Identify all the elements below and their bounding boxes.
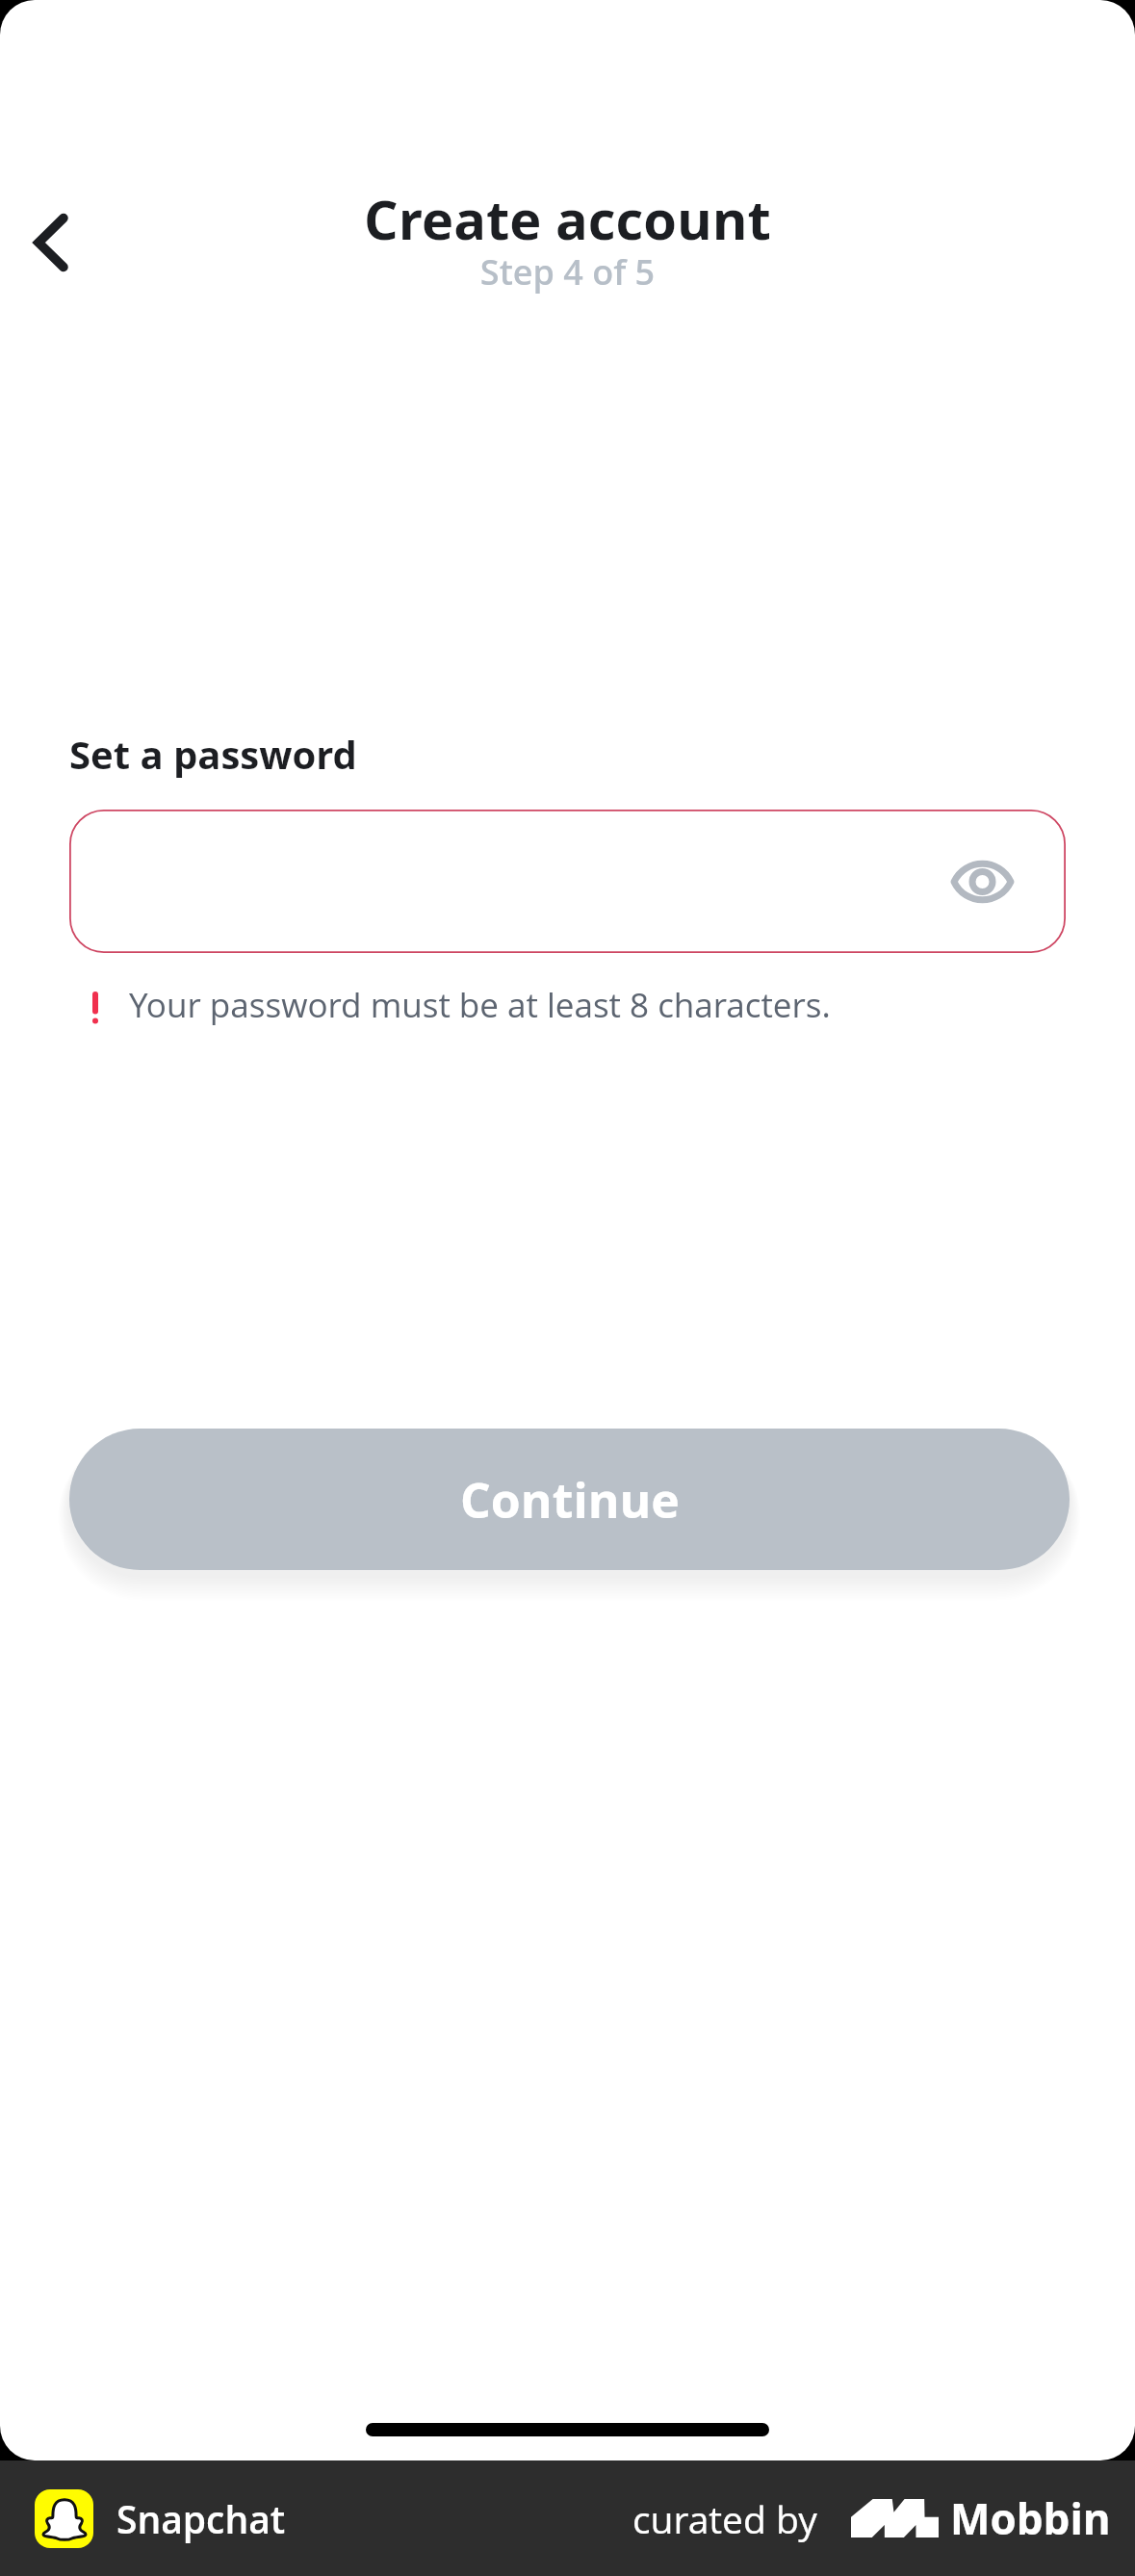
staticText: Mobbin bbox=[950, 2489, 1111, 2547]
button[interactable]: Continue bbox=[69, 1429, 1070, 1570]
button[interactable]: Back bbox=[1, 193, 101, 293]
staticText: Step 4 of 5 bbox=[0, 248, 1135, 296]
staticText: Create account bbox=[0, 182, 1135, 255]
staticText: Set a password bbox=[69, 728, 357, 780]
staticText: Your password must be at least 8 charact… bbox=[129, 982, 831, 1028]
staticText: curated by bbox=[632, 2493, 817, 2544]
button[interactable]: Show password bbox=[932, 832, 1032, 932]
staticText: Snapchat bbox=[116, 2493, 286, 2544]
button[interactable]: Show password bbox=[69, 810, 1066, 953]
staticText: Continue bbox=[460, 1467, 680, 1533]
